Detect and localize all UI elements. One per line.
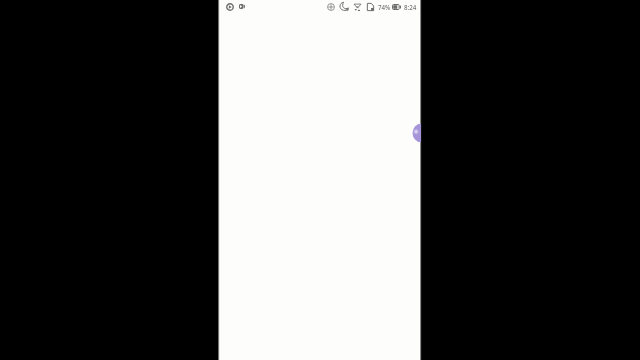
staticText: 8:24 bbox=[404, 3, 417, 11]
staticText: 74% bbox=[378, 3, 391, 11]
button[interactable]: Assistive touch menu bbox=[403, 122, 421, 144]
